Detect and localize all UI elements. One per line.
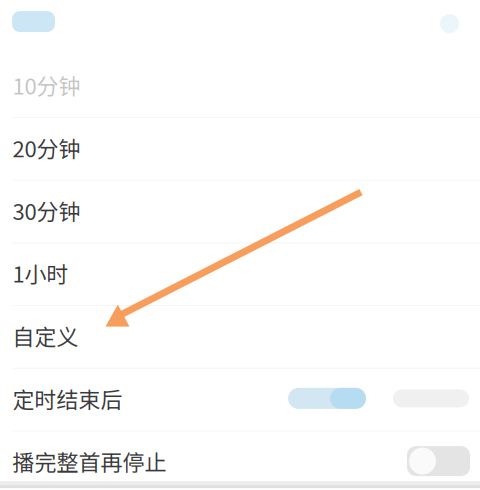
staticText: 10分钟 (12, 69, 80, 101)
button[interactable]: 30分钟 (0, 179, 480, 241)
staticText: 播完整首再停止 (12, 445, 166, 477)
staticText: 20分钟 (12, 132, 80, 164)
button[interactable]: More (440, 14, 459, 33)
button[interactable]: 1小时 (0, 242, 480, 304)
staticText: 定时结束后 (12, 382, 122, 414)
staticText: 30分钟 (12, 194, 80, 226)
staticText: 自定义 (12, 320, 78, 352)
button[interactable]: 播完整首再停止 (0, 430, 480, 490)
button[interactable]: Tag (12, 11, 55, 32)
button[interactable]: 10分钟 (0, 54, 480, 116)
button[interactable]: 20分钟 (0, 117, 480, 178)
staticText: 1小时 (12, 257, 68, 289)
button[interactable]: 自定义 (0, 305, 480, 367)
button[interactable]: 定时结束后 (0, 368, 480, 429)
